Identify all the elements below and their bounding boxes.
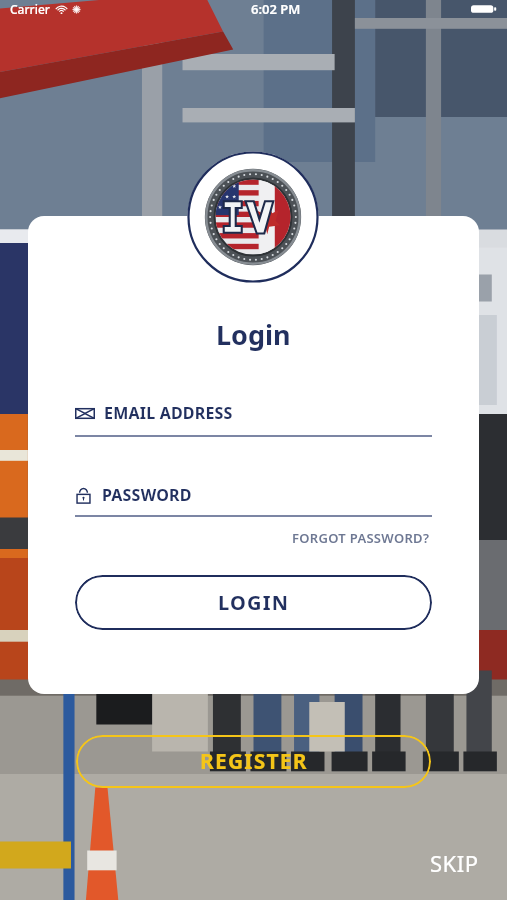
staticText: 6:02 PM bbox=[251, 0, 301, 18]
other: Ironworkers logo bbox=[187, 151, 319, 283]
button[interactable]: LOGIN bbox=[75, 575, 432, 630]
staticText: Login bbox=[216, 316, 291, 353]
staticText: Carrier bbox=[10, 1, 50, 17]
button[interactable]: SKIP bbox=[424, 844, 485, 882]
staticText: SKIP bbox=[430, 848, 479, 878]
staticText: REGISTER bbox=[200, 747, 308, 776]
button[interactable]: REGISTER bbox=[76, 735, 431, 788]
staticText: PASSWORD bbox=[102, 484, 192, 506]
staticText: EMAIL ADDRESS bbox=[104, 402, 233, 424]
staticText: LOGIN bbox=[218, 589, 290, 616]
button[interactable]: FORGOT PASSWORD? bbox=[290, 527, 432, 549]
staticText: FORGOT PASSWORD? bbox=[292, 529, 430, 547]
